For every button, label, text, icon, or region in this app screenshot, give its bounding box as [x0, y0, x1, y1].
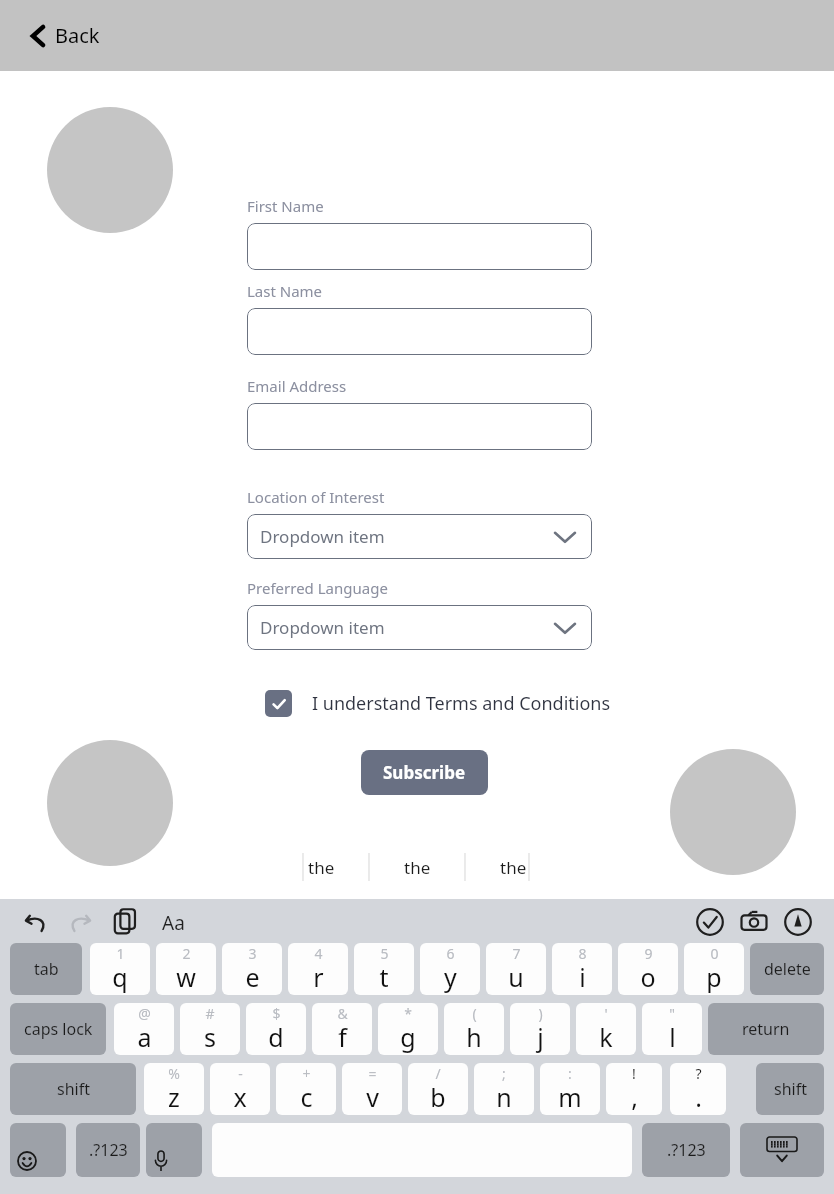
- staticText: y: [444, 960, 457, 994]
- button[interactable]: $: [246, 1003, 306, 1055]
- button[interactable]: %: [144, 1063, 204, 1115]
- button[interactable]: 2: [156, 943, 216, 995]
- staticText: Location of Interest: [247, 487, 385, 507]
- staticText: n: [496, 1080, 512, 1114]
- button[interactable]: ?: [670, 1063, 726, 1115]
- button[interactable]: I understand Terms and Conditions: [265, 690, 611, 717]
- staticText: .?123: [89, 1139, 128, 1161]
- button[interactable]: (: [444, 1003, 504, 1055]
- staticText: e: [245, 960, 260, 994]
- staticText: *: [404, 1004, 412, 1023]
- button[interactable]: Camera: [740, 908, 768, 936]
- staticText: b: [430, 1080, 446, 1114]
- button[interactable]: Hide keyboard: [740, 1123, 824, 1177]
- button[interactable]: ": [642, 1003, 702, 1055]
- button[interactable]: :: [540, 1063, 600, 1115]
- button[interactable]: Aa: [158, 906, 189, 940]
- staticText: ': [604, 1004, 608, 1023]
- button[interactable]: [247, 403, 592, 450]
- staticText: 7: [512, 944, 521, 963]
- button[interactable]: !: [606, 1063, 662, 1115]
- button[interactable]: &: [312, 1003, 372, 1055]
- staticText: tab: [34, 958, 59, 980]
- button[interactable]: caps lock: [10, 1003, 106, 1055]
- button[interactable]: delete: [750, 943, 824, 995]
- button[interactable]: .?123: [642, 1123, 730, 1177]
- button[interactable]: =: [342, 1063, 402, 1115]
- button[interactable]: +: [276, 1063, 336, 1115]
- staticText: delete: [764, 958, 811, 980]
- button[interactable]: tab: [10, 943, 82, 995]
- staticText: d: [268, 1020, 284, 1054]
- button[interactable]: [247, 223, 592, 270]
- staticText: 8: [578, 944, 587, 963]
- staticText: %: [168, 1064, 180, 1083]
- button[interactable]: *: [378, 1003, 438, 1055]
- button[interactable]: Emoji: [10, 1123, 66, 1177]
- button[interactable]: -: [210, 1063, 270, 1115]
- staticText: ,: [631, 1080, 638, 1114]
- button[interactable]: 7: [486, 943, 546, 995]
- staticText: q: [112, 960, 128, 994]
- staticText: m: [558, 1080, 582, 1114]
- button[interactable]: Back: [22, 16, 108, 55]
- staticText: .?123: [667, 1139, 706, 1161]
- button[interactable]: Subscribe: [361, 750, 488, 795]
- button[interactable]: the: [479, 851, 547, 883]
- staticText: 6: [446, 944, 455, 963]
- button[interactable]: Dropdown item: [247, 514, 592, 559]
- button[interactable]: the: [383, 851, 451, 883]
- button[interactable]: ': [576, 1003, 636, 1055]
- button[interactable]: Confirm: [696, 908, 724, 936]
- button[interactable]: 0: [684, 943, 744, 995]
- button[interactable]: shift: [10, 1063, 136, 1115]
- staticText: -: [238, 1064, 243, 1083]
- staticText: $: [272, 1004, 281, 1023]
- staticText: .: [695, 1080, 702, 1114]
- staticText: Aa: [162, 910, 185, 936]
- button[interactable]: Markup: [784, 908, 812, 936]
- button[interactable]: /: [408, 1063, 468, 1115]
- staticText: /: [435, 1064, 441, 1083]
- staticText: Email Address: [247, 376, 347, 396]
- staticText: c: [300, 1080, 313, 1114]
- staticText: l: [669, 1020, 676, 1054]
- staticText: 5: [380, 944, 389, 963]
- button[interactable]: shift: [756, 1063, 824, 1115]
- staticText: caps lock: [24, 1018, 93, 1040]
- staticText: ?: [695, 1064, 702, 1083]
- button[interactable]: [247, 308, 592, 355]
- button[interactable]: the: [287, 851, 355, 883]
- button[interactable]: 8: [552, 943, 612, 995]
- staticText: f: [338, 1020, 347, 1054]
- button[interactable]: 6: [420, 943, 480, 995]
- staticText: i: [579, 960, 586, 994]
- staticText: ": [669, 1004, 675, 1023]
- button[interactable]: #: [180, 1003, 240, 1055]
- button[interactable]: Dropdown item: [247, 605, 592, 650]
- staticText: the: [404, 856, 431, 879]
- button[interactable]: 5: [354, 943, 414, 995]
- staticText: Last Name: [247, 281, 323, 301]
- staticText: First Name: [247, 196, 324, 216]
- button[interactable]: Paste: [112, 907, 140, 935]
- button[interactable]: 3: [222, 943, 282, 995]
- button[interactable]: 4: [288, 943, 348, 995]
- button[interactable]: 1: [90, 943, 150, 995]
- staticText: Back: [55, 22, 100, 49]
- staticText: t: [379, 960, 389, 994]
- staticText: ;: [502, 1064, 506, 1083]
- button[interactable]: ;: [474, 1063, 534, 1115]
- staticText: s: [204, 1020, 216, 1054]
- button[interactable]: Dictation: [146, 1123, 202, 1177]
- button[interactable]: 9: [618, 943, 678, 995]
- button[interactable]: @: [114, 1003, 174, 1055]
- staticText: Dropdown item: [260, 525, 385, 548]
- button[interactable]: Redo: [66, 908, 94, 936]
- button[interactable]: ): [510, 1003, 570, 1055]
- button[interactable]: .?123: [76, 1123, 140, 1177]
- staticText: u: [508, 960, 524, 994]
- button[interactable]: Undo: [22, 908, 50, 936]
- button[interactable]: return: [708, 1003, 824, 1055]
